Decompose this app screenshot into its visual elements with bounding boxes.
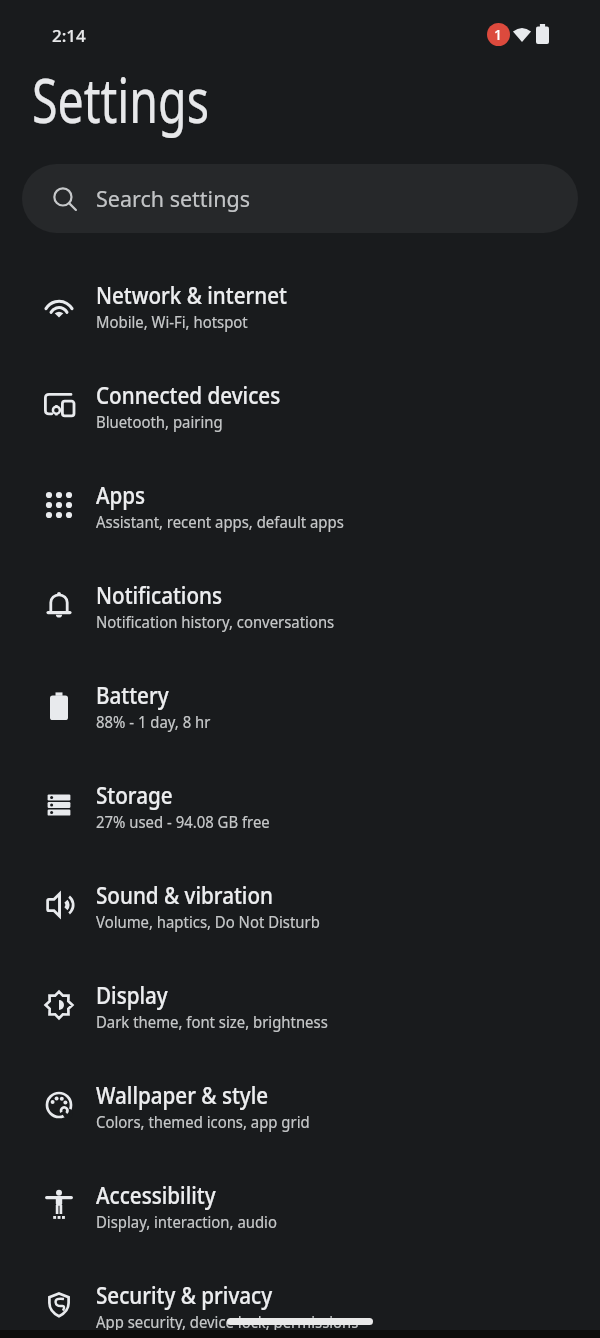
staticText: App security, device lock, permissions xyxy=(96,1311,359,1333)
staticText: Wallpaper & style xyxy=(96,1078,269,1111)
staticText: Settings xyxy=(32,57,209,141)
staticText: Connected devices xyxy=(96,378,281,411)
staticText: Display, interaction, audio xyxy=(96,1211,277,1233)
staticText: Security & privacy xyxy=(96,1278,272,1311)
staticText: 2:14 xyxy=(52,24,86,47)
staticText: Apps xyxy=(96,478,146,511)
button[interactable]: Wallpaper & style xyxy=(0,1055,600,1155)
button[interactable]: Security & privacy xyxy=(0,1255,600,1338)
button[interactable]: Connected devices xyxy=(0,355,600,455)
staticText: 27% used - 94.08 GB free xyxy=(96,811,270,833)
staticText: Mobile, Wi-Fi, hotspot xyxy=(96,311,248,333)
staticText: Notification history, conversations xyxy=(96,611,335,633)
staticText: Network & internet xyxy=(96,278,288,311)
staticText: Storage xyxy=(96,778,173,811)
button[interactable]: Accessibility xyxy=(0,1155,600,1255)
staticText: Volume, haptics, Do Not Disturb xyxy=(96,911,320,933)
staticText: Display xyxy=(96,978,168,1011)
button[interactable]: Search settings xyxy=(22,164,578,233)
button[interactable]: Apps xyxy=(0,455,600,555)
button[interactable]: Storage xyxy=(0,755,600,855)
button[interactable]: Network & internet xyxy=(0,255,600,355)
staticText: Colors, themed icons, app grid xyxy=(96,1111,310,1133)
button[interactable]: Display xyxy=(0,955,600,1055)
staticText: Search settings xyxy=(96,184,250,213)
staticText: Assistant, recent apps, default apps xyxy=(96,511,344,533)
staticText: Battery xyxy=(96,678,169,711)
staticText: Accessibility xyxy=(96,1178,216,1211)
staticText: 88% - 1 day, 8 hr xyxy=(96,711,210,733)
staticText: 1 xyxy=(494,25,503,44)
staticText: Bluetooth, pairing xyxy=(96,411,223,433)
staticText: Notifications xyxy=(96,578,222,611)
staticText: Sound & vibration xyxy=(96,878,273,911)
button[interactable]: Notifications xyxy=(0,555,600,655)
button[interactable]: Battery xyxy=(0,655,600,755)
button[interactable]: Sound & vibration xyxy=(0,855,600,955)
staticText: Dark theme, font size, brightness xyxy=(96,1011,328,1033)
